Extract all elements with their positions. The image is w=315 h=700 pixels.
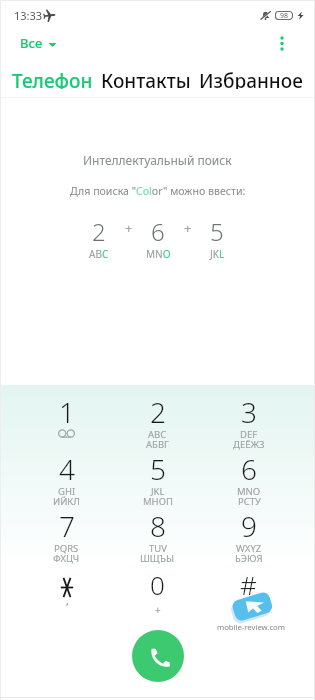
staticText: Интеллектуальный поиск (83, 152, 232, 168)
staticText: РСТУ (238, 495, 261, 508)
staticText: 5 (210, 215, 224, 248)
staticText: 4 (59, 450, 75, 488)
staticText: ЬЭЮЯ (235, 552, 263, 565)
staticText: PQRS (54, 542, 79, 555)
staticText: MNO (146, 247, 171, 261)
button[interactable]: 5 (112, 454, 203, 518)
staticText: MNO (237, 485, 261, 498)
staticText: GHI (58, 485, 76, 498)
staticText: 5 (150, 450, 166, 488)
staticText: TUV (149, 542, 167, 555)
button[interactable]: Контакты (97, 62, 195, 95)
staticText: 0 (150, 567, 165, 602)
staticText: ABC (89, 247, 109, 261)
staticText: 6 (241, 450, 257, 488)
button[interactable]: Избранное (195, 62, 307, 95)
button[interactable]: 8 (112, 511, 203, 575)
staticText: Все (20, 34, 43, 52)
staticText: + (155, 603, 161, 617)
staticText: ШЩЪЫ (140, 552, 175, 565)
staticText: JKL (151, 485, 165, 498)
button[interactable]: Star (21, 567, 112, 602)
staticText: 8 (150, 507, 166, 545)
staticText: , (66, 594, 69, 608)
staticText: 9 (241, 507, 257, 545)
staticText: Избранное (199, 68, 303, 89)
staticText: 6 (151, 215, 165, 248)
button[interactable]: 1 (21, 397, 112, 444)
button[interactable]: 3 (203, 397, 294, 461)
staticText: 7 (59, 507, 75, 545)
button[interactable]: 4 (21, 454, 112, 518)
staticText: Контакты (101, 68, 191, 89)
button[interactable]: 0 (112, 567, 203, 617)
staticText: # (240, 567, 257, 602)
staticText: 98 (280, 11, 289, 20)
staticText: Телефон (12, 68, 93, 89)
staticText: МНОП (143, 495, 173, 508)
staticText: mobile-review.com (217, 622, 285, 632)
button[interactable]: 7 (21, 511, 112, 575)
staticText: Для поиска "Color" можно ввести: (70, 184, 246, 198)
staticText: + (125, 219, 133, 237)
staticText: ИЙКЛ (53, 495, 80, 508)
button[interactable]: Все (14, 29, 63, 57)
button[interactable]: More options (264, 25, 300, 61)
button[interactable]: Телефон (8, 62, 97, 95)
staticText: 1 (59, 393, 75, 431)
staticText: JKL (210, 247, 225, 261)
staticText: 13:33 (14, 8, 43, 23)
button[interactable]: 9 (203, 511, 294, 575)
staticText: DEF (240, 428, 258, 441)
staticText: 2 (150, 393, 166, 431)
staticText: 3 (241, 393, 257, 431)
button[interactable]: Hash (203, 567, 294, 602)
staticText: ABC (148, 428, 167, 441)
button[interactable]: 2 (112, 397, 203, 461)
staticText: + (184, 219, 192, 237)
button[interactable]: Call (132, 630, 184, 682)
staticText: 2 (92, 215, 106, 248)
staticText: АБВГ (146, 438, 169, 451)
staticText: ДЕЁЖЗ (233, 438, 265, 451)
button[interactable]: 6 (203, 454, 294, 518)
staticText: WXYZ (236, 542, 262, 555)
staticText: ФХЦЧ (53, 552, 80, 565)
